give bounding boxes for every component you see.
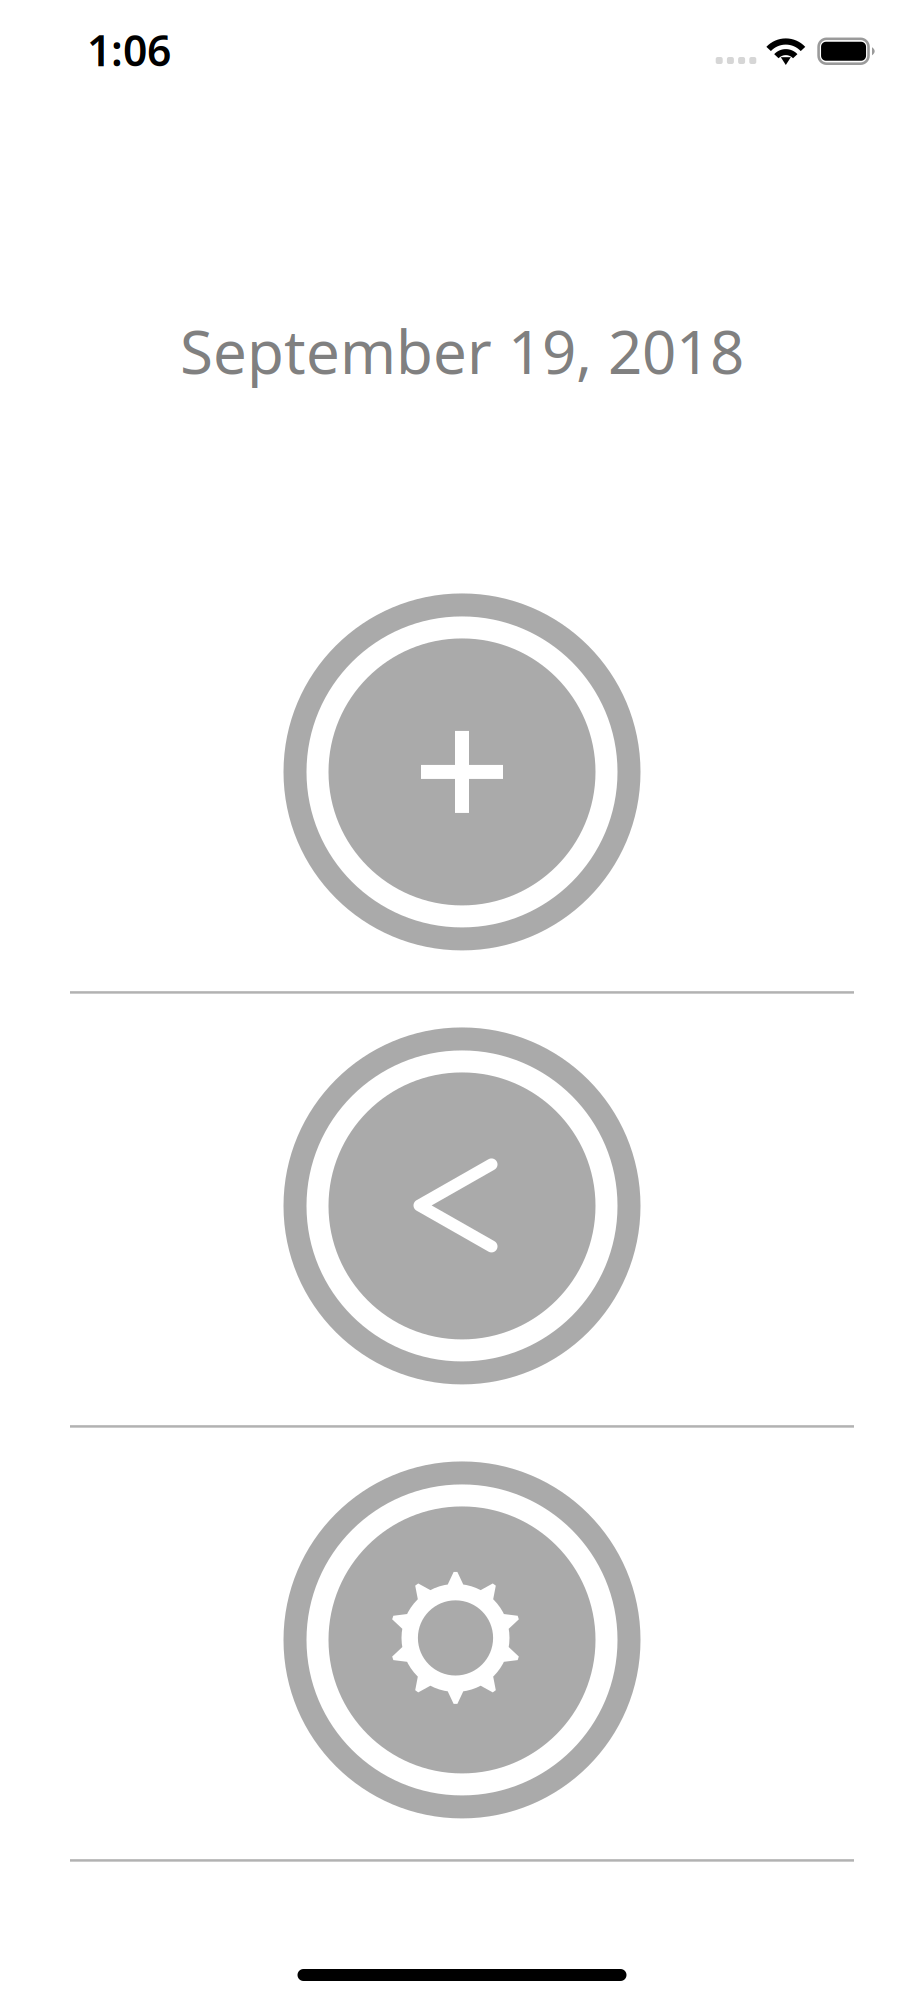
- button[interactable]: Back: [0, 994, 924, 1425]
- button[interactable]: Settings: [0, 1428, 924, 1859]
- button[interactable]: Add: [0, 560, 924, 991]
- staticText: September 19, 2018: [180, 311, 744, 391]
- staticText: 1:06: [87, 21, 171, 78]
